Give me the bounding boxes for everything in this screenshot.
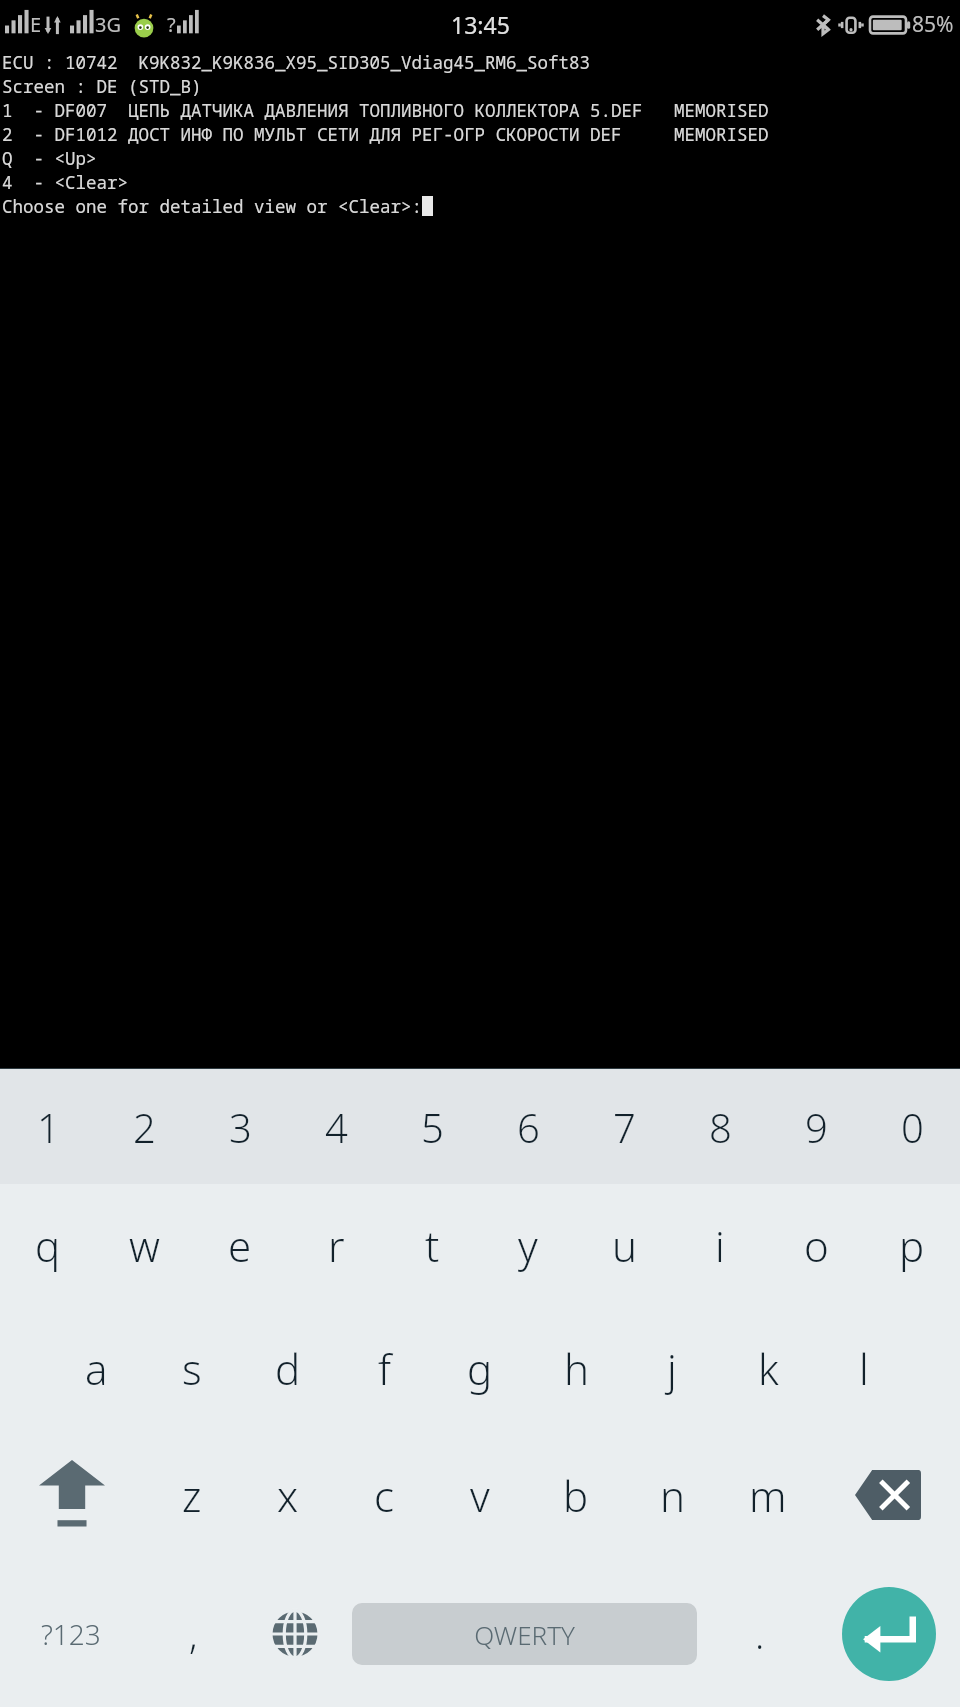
staticText: Choose one for detailed view or <Clear>: [2,194,422,218]
button[interactable]: 9 [768,1069,864,1184]
button[interactable]: Change language [244,1560,346,1707]
staticText: ? [167,11,176,38]
button[interactable]: 2 [96,1069,192,1184]
staticText: 1 - DF007 ЦЕПЬ ДАТЧИКА ДАВЛЕНИЯ ТОПЛИВНО… [2,98,769,122]
staticText: p [899,1217,925,1274]
staticText: E [30,11,42,38]
button[interactable]: 0 [864,1069,960,1184]
staticText: f [378,1340,391,1397]
staticText: 2 - DF1012 ДОСТ ИНФ ПО МУЛЬТ СЕТИ ДЛЯ РЕ… [2,122,769,146]
button[interactable]: s [144,1307,240,1430]
staticText: 7 [613,1100,636,1154]
button[interactable]: 6 [480,1069,576,1184]
staticText: a [85,1340,108,1397]
button[interactable]: o [768,1184,864,1307]
staticText: z [182,1467,202,1524]
staticText: 9 [805,1100,828,1154]
button[interactable]: q [0,1184,96,1307]
button[interactable]: c [336,1430,432,1560]
button[interactable]: ?123 [0,1560,142,1707]
staticText: y [518,1217,538,1274]
button[interactable]: p [864,1184,960,1307]
button[interactable]: . [702,1560,818,1707]
staticText: QWERTY [474,1617,575,1652]
staticText: 4 [325,1100,348,1154]
staticText: d [275,1340,301,1397]
staticText: w [129,1217,160,1274]
button[interactable]: i [672,1184,768,1307]
staticText: 3G [95,11,121,38]
button[interactable]: r [288,1184,384,1307]
button[interactable]: f [336,1307,432,1430]
button[interactable]: 1 [0,1069,96,1184]
staticText: . [755,1608,765,1660]
staticText: j [667,1340,677,1397]
button[interactable]: x [240,1430,336,1560]
staticText: n [660,1467,685,1524]
button[interactable]: t [384,1184,480,1307]
button[interactable]: v [432,1430,528,1560]
button[interactable]: 7 [576,1069,672,1184]
staticText: Q - <Up> [2,146,97,170]
button[interactable]: d [240,1307,336,1430]
staticText: o [804,1217,829,1274]
button[interactable]: z [144,1430,240,1560]
staticText: g [467,1340,493,1397]
staticText: c [374,1467,394,1524]
staticText: ECU : 10742 K9K832_K9K836_X95_SID305_Vdi… [2,50,590,74]
button[interactable]: 5 [384,1069,480,1184]
button[interactable]: Shift [0,1430,144,1560]
staticText: q [35,1217,61,1274]
staticText: 4 - <Clear> [2,170,128,194]
button[interactable]: , [142,1560,244,1707]
button[interactable]: k [720,1307,816,1430]
staticText: h [564,1340,589,1397]
staticText: 2 [133,1100,156,1154]
staticText: 85% [912,10,954,39]
staticText: 8 [709,1100,732,1154]
staticText: t [425,1217,440,1274]
button[interactable]: m [720,1430,816,1560]
staticText: u [612,1217,637,1274]
staticText: s [182,1340,202,1397]
button[interactable]: j [624,1307,720,1430]
staticText: , [189,1608,198,1660]
button[interactable]: e [192,1184,288,1307]
button[interactable]: u [576,1184,672,1307]
staticText: 3 [229,1100,252,1154]
button[interactable]: l [816,1307,912,1430]
staticText: i [715,1217,725,1274]
button[interactable]: y [480,1184,576,1307]
staticText: 0 [901,1100,924,1154]
button[interactable]: 8 [672,1069,768,1184]
button[interactable]: h [528,1307,624,1430]
button[interactable]: Backspace [816,1430,960,1560]
button[interactable]: g [432,1307,528,1430]
staticText: l [859,1340,869,1397]
staticText: 13:45 [451,9,510,40]
button[interactable]: w [96,1184,192,1307]
staticText: v [470,1467,490,1524]
staticText: 1 [37,1100,60,1154]
staticText: 5 [421,1100,444,1154]
staticText: k [758,1340,779,1397]
staticText: 6 [517,1100,540,1154]
button[interactable]: Enter [842,1587,936,1681]
button[interactable]: QWERTY [352,1603,697,1665]
staticText: b [563,1467,589,1524]
button[interactable]: 4 [288,1069,384,1184]
button[interactable]: n [624,1430,720,1560]
staticText: Screen : DE (STD_B) [2,74,202,98]
staticText: r [328,1217,345,1274]
button[interactable]: a [48,1307,144,1430]
button[interactable]: 3 [192,1069,288,1184]
staticText: m [749,1467,787,1524]
staticText: ?123 [41,1615,101,1653]
staticText: x [277,1467,299,1524]
button[interactable]: b [528,1430,624,1560]
staticText: e [228,1217,252,1274]
